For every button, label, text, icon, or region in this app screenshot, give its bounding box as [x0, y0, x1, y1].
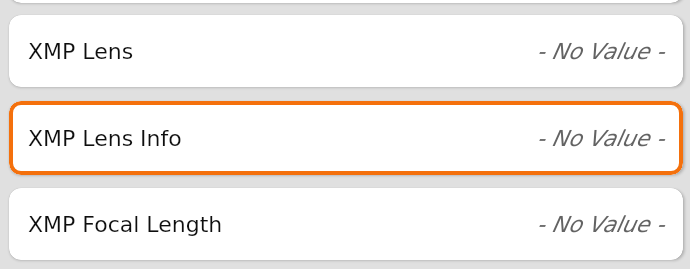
staticText: - No Value -	[537, 39, 665, 65]
staticText: XMP Lens Info	[28, 126, 182, 152]
button[interactable]: XMP Lens	[9, 15, 683, 87]
button[interactable]: XMP Lens Info	[9, 101, 683, 175]
staticText: - No Value -	[537, 126, 665, 152]
staticText: XMP Focal Length	[28, 212, 223, 238]
staticText: XMP Lens	[28, 39, 134, 65]
button[interactable]: XMP Focal Length	[9, 188, 683, 260]
staticText: - No Value -	[537, 212, 665, 238]
